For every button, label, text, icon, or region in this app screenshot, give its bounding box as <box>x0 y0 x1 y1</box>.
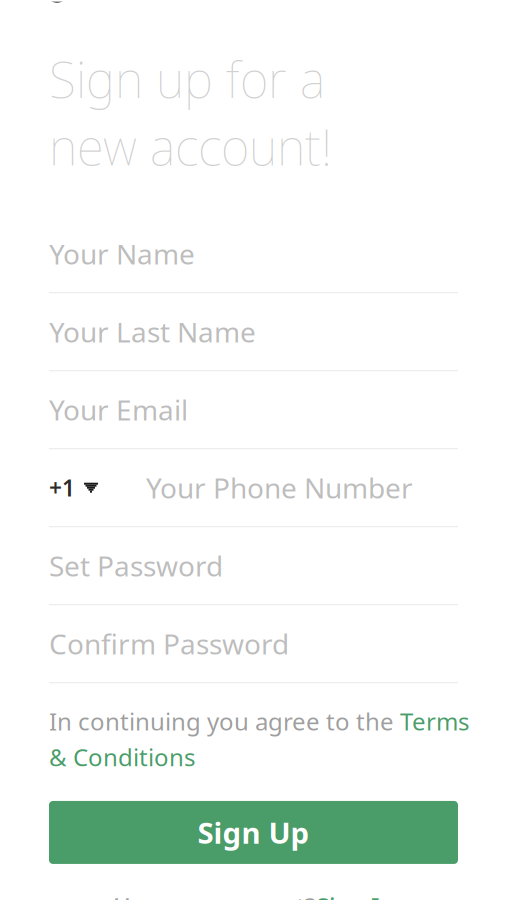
staticText: Confirm Password <box>49 625 289 662</box>
staticText: Your Phone Number <box>146 469 413 506</box>
staticText: Your Email <box>49 391 188 428</box>
button[interactable]: & Conditions <box>49 741 195 773</box>
button[interactable]: Sign Up <box>49 801 458 864</box>
staticText: Sign Up <box>197 813 309 852</box>
staticText: new account! <box>49 114 332 179</box>
button[interactable]: Have an account? <box>0 886 507 900</box>
staticText: In continuing you agree to the <box>49 705 400 737</box>
staticText: Your Name <box>49 235 195 272</box>
staticText: & Conditions <box>49 741 195 773</box>
staticText: Sign up for a <box>49 46 325 112</box>
button[interactable]: Terms <box>400 705 469 737</box>
staticText: Your Last Name <box>49 313 256 350</box>
staticText: +1 <box>49 473 75 503</box>
staticText: Terms <box>400 705 469 737</box>
staticText: Have an account? <box>113 890 316 900</box>
staticText: Set Password <box>49 547 223 584</box>
staticText: Sign In <box>316 890 394 900</box>
